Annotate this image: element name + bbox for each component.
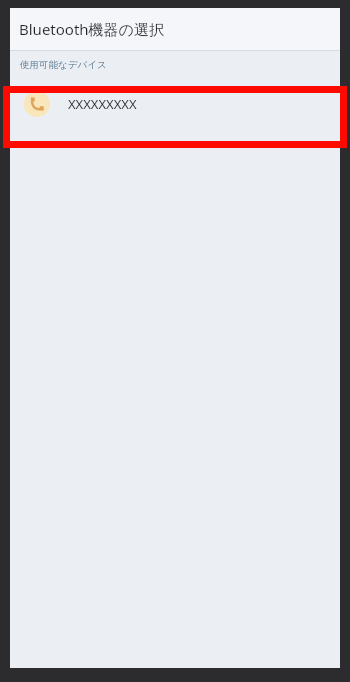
staticText: XXXXXXXXX <box>68 95 137 113</box>
button[interactable]: Phone device <box>10 79 340 129</box>
staticText: Bluetooth機器の選択 <box>19 19 164 39</box>
staticText: 使用可能なデバイス <box>20 59 107 71</box>
other: Phone device <box>24 91 50 117</box>
